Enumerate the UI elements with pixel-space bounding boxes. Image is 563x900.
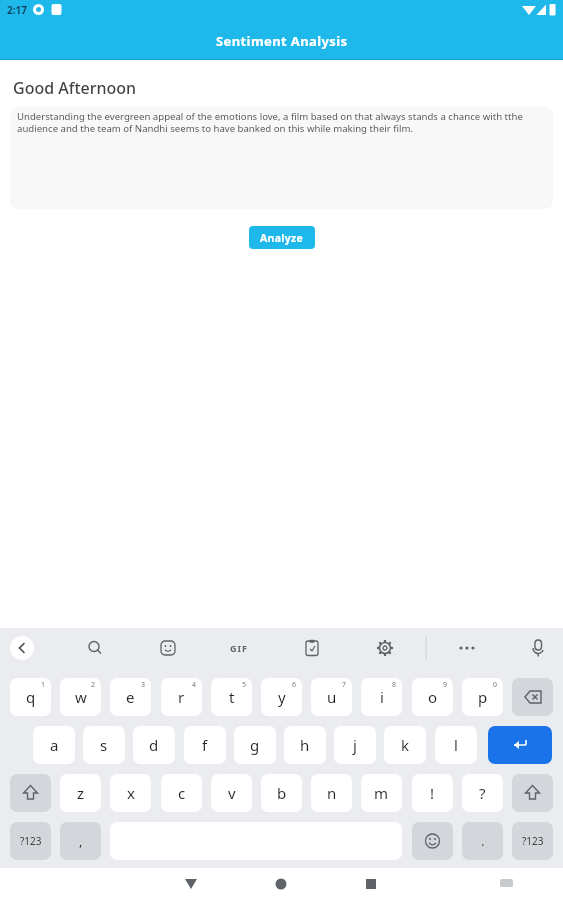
staticText: Analyze <box>260 231 304 245</box>
staticText: Understanding the evergreen appeal of th… <box>17 110 523 135</box>
staticText: m <box>374 783 389 803</box>
button[interactable]: a <box>33 726 75 764</box>
button[interactable]: x <box>110 774 151 812</box>
staticText: ! <box>430 783 435 803</box>
staticText: c <box>178 783 186 803</box>
staticText: y <box>278 687 286 707</box>
staticText: Good Afternoon <box>13 77 137 99</box>
staticText: . <box>481 832 485 850</box>
button[interactable] <box>10 774 51 812</box>
button[interactable] <box>512 774 553 812</box>
button[interactable]: d <box>133 726 175 764</box>
staticText: t <box>229 687 235 707</box>
button[interactable]: i <box>361 678 402 716</box>
staticText: 8 <box>392 680 397 690</box>
button[interactable] <box>175 868 207 900</box>
button[interactable] <box>222 632 254 664</box>
staticText: 2:17 <box>7 3 27 17</box>
button[interactable]: y <box>261 678 302 716</box>
button[interactable]: f <box>184 726 226 764</box>
button[interactable] <box>10 636 34 660</box>
button[interactable]: Understanding the evergreen appeal of th… <box>10 107 553 209</box>
button[interactable]: o <box>412 678 453 716</box>
staticText: z <box>77 783 85 803</box>
staticText: 2 <box>91 680 96 690</box>
staticText: a <box>50 735 59 755</box>
button[interactable] <box>412 822 453 860</box>
staticText: r <box>178 687 185 707</box>
button[interactable] <box>490 868 522 900</box>
button[interactable]: b <box>261 774 302 812</box>
staticText: 6 <box>292 680 297 690</box>
staticText: 5 <box>242 680 247 690</box>
staticText: o <box>428 687 438 707</box>
staticText: 9 <box>443 680 448 690</box>
button[interactable] <box>488 726 552 764</box>
staticText: q <box>26 687 36 707</box>
staticText: g <box>250 735 260 755</box>
button[interactable]: q <box>10 678 51 716</box>
staticText: p <box>478 687 488 707</box>
staticText: n <box>327 783 337 803</box>
button[interactable]: r <box>161 678 202 716</box>
button[interactable]: p <box>462 678 503 716</box>
button[interactable]: ? <box>462 774 503 812</box>
staticText: j <box>353 735 357 755</box>
button[interactable]: ! <box>412 774 453 812</box>
staticText: u <box>327 687 337 707</box>
button[interactable]: k <box>384 726 426 764</box>
button[interactable] <box>296 632 328 664</box>
button[interactable]: h <box>284 726 326 764</box>
staticText: s <box>100 735 108 755</box>
button[interactable]: e <box>110 678 151 716</box>
button[interactable]: g <box>234 726 276 764</box>
button[interactable] <box>79 632 111 664</box>
staticText: Sentiment Analysis <box>216 32 348 50</box>
staticText: e <box>126 687 135 707</box>
button[interactable]: u <box>311 678 352 716</box>
button[interactable]: t <box>211 678 252 716</box>
button[interactable]: ?123 <box>512 822 553 860</box>
button[interactable]: n <box>311 774 352 812</box>
staticText: ?123 <box>20 834 42 848</box>
button[interactable]: ?123 <box>10 822 51 860</box>
button[interactable]: j <box>334 726 376 764</box>
button[interactable]: , <box>60 822 101 860</box>
staticText: l <box>454 735 458 755</box>
staticText: 7 <box>342 680 347 690</box>
staticText: h <box>300 735 310 755</box>
button[interactable] <box>355 868 387 900</box>
button[interactable]: Analyze <box>249 226 315 249</box>
button[interactable]: m <box>361 774 402 812</box>
staticText: w <box>75 687 87 707</box>
button[interactable]: v <box>211 774 252 812</box>
staticText: d <box>149 735 159 755</box>
button[interactable]: s <box>83 726 125 764</box>
staticText: 0 <box>493 680 498 690</box>
staticText: i <box>380 687 384 707</box>
staticText: ? <box>479 783 486 803</box>
staticText: v <box>228 783 236 803</box>
staticText: GIF <box>230 642 248 654</box>
button[interactable]: . <box>462 822 503 860</box>
button[interactable] <box>369 632 401 664</box>
button[interactable]: c <box>161 774 202 812</box>
staticText: k <box>401 735 410 755</box>
staticText: 4 <box>192 680 197 690</box>
staticText: 3 <box>141 680 146 690</box>
staticText: f <box>202 735 208 755</box>
button[interactable] <box>152 632 184 664</box>
staticText: b <box>277 783 287 803</box>
staticText: , <box>79 832 83 850</box>
button[interactable]: w <box>60 678 101 716</box>
button[interactable]: l <box>435 726 477 764</box>
button[interactable] <box>451 632 483 664</box>
button[interactable] <box>265 868 297 900</box>
staticText: 1 <box>41 680 46 690</box>
staticText: ?123 <box>522 834 544 848</box>
staticText: x <box>127 783 135 803</box>
button[interactable]: z <box>60 774 101 812</box>
button[interactable] <box>522 632 554 664</box>
button[interactable] <box>512 678 553 716</box>
